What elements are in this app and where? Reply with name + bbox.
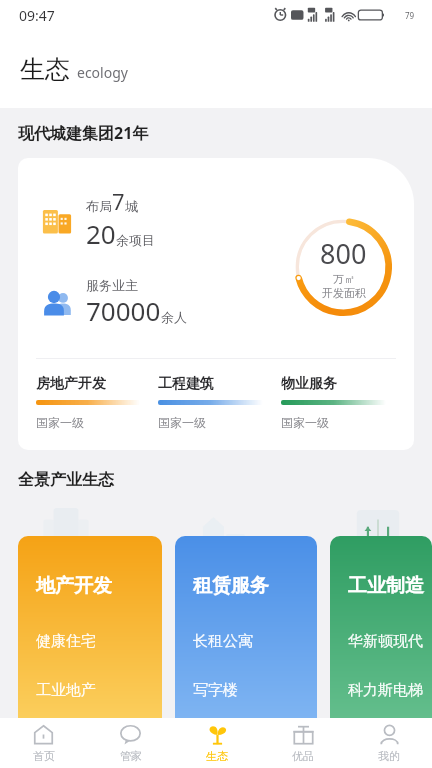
staticText: 国家一级 — [36, 415, 84, 430]
button[interactable]: 我的 — [346, 718, 432, 768]
button[interactable]: 布局 — [18, 158, 414, 450]
staticText: 全景产业生态 — [18, 470, 114, 490]
staticText: 服务业主 — [86, 277, 138, 293]
staticText: 布局 — [86, 198, 112, 214]
staticText: 20 — [86, 216, 116, 251]
staticText: 余项目 — [116, 232, 155, 248]
staticText: 工业地产 — [36, 681, 96, 700]
staticText: 70000 — [86, 293, 161, 328]
staticText: 我的 — [378, 749, 400, 763]
staticText: 开发面积 — [322, 286, 366, 300]
staticText: 租赁服务 — [193, 574, 269, 598]
staticText: 科力斯电梯 — [348, 681, 423, 700]
staticText: 09:47 — [19, 6, 55, 25]
staticText: 管家 — [120, 749, 142, 763]
staticText: 800 — [320, 235, 367, 272]
staticText: 城 — [125, 198, 138, 214]
staticText: 79 — [405, 10, 415, 21]
staticText: 余人 — [161, 309, 187, 325]
staticText: 首页 — [33, 749, 55, 763]
staticText: ecology — [77, 63, 128, 82]
button[interactable]: 工业制造 — [330, 508, 432, 718]
staticText: 优品 — [292, 749, 314, 763]
staticText: 国家一级 — [281, 415, 329, 430]
staticText: 华新顿现代 — [348, 632, 423, 651]
staticText: 健康住宅 — [36, 632, 96, 651]
button[interactable]: 生态 — [174, 718, 260, 768]
staticText: 工程建筑 — [158, 375, 214, 393]
button[interactable]: 管家 — [87, 718, 174, 768]
staticText: 万㎡ — [333, 272, 355, 286]
button[interactable]: 首页 — [0, 718, 87, 768]
staticText: 国家一级 — [158, 415, 206, 430]
button[interactable]: 租赁服务 — [175, 508, 317, 718]
staticText: 地产开发 — [36, 574, 112, 598]
staticText: 生态 — [206, 749, 228, 763]
staticText: 长租公寓 — [193, 632, 253, 651]
button[interactable]: 地产开发 — [18, 508, 162, 718]
staticText: 房地产开发 — [36, 375, 106, 393]
staticText: 现代城建集团21年 — [18, 122, 149, 144]
staticText: 工业制造 — [348, 574, 424, 598]
staticText: 物业服务 — [281, 375, 337, 393]
staticText: 生态 — [20, 54, 70, 85]
button[interactable]: 优品 — [260, 718, 346, 768]
staticText: 7 — [112, 186, 125, 216]
staticText: 写字楼 — [193, 681, 238, 700]
